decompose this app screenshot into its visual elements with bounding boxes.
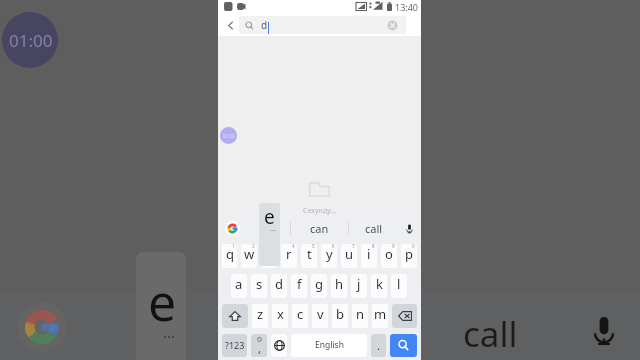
staticText: d bbox=[275, 275, 283, 293]
staticText: e bbox=[148, 268, 177, 336]
staticText: m bbox=[374, 305, 387, 323]
staticText: i bbox=[367, 245, 371, 263]
button[interactable]: d bbox=[271, 274, 287, 298]
button[interactable]: can bbox=[291, 216, 348, 241]
button[interactable]: z bbox=[252, 304, 268, 328]
button[interactable]: i bbox=[361, 244, 377, 268]
button[interactable]: . bbox=[371, 334, 386, 357]
staticText: z bbox=[257, 305, 264, 323]
button[interactable]: l bbox=[391, 274, 407, 298]
button[interactable]: Backspace bbox=[392, 304, 417, 328]
button[interactable]: Clear search bbox=[387, 20, 398, 31]
staticText: v bbox=[317, 305, 324, 323]
staticText: . bbox=[377, 338, 380, 353]
staticText: d bbox=[261, 18, 268, 32]
button[interactable]: t bbox=[301, 244, 317, 268]
staticText: k bbox=[376, 275, 383, 293]
staticText: 4 bbox=[292, 244, 295, 249]
button[interactable]: s bbox=[251, 274, 267, 298]
button[interactable]: u bbox=[341, 244, 357, 268]
button[interactable]: Shift bbox=[222, 304, 248, 328]
button[interactable]: English bbox=[291, 334, 367, 357]
button[interactable]: v bbox=[312, 304, 328, 328]
button[interactable]: ?123 bbox=[222, 334, 247, 357]
staticText: , bbox=[258, 341, 261, 356]
staticText: e bbox=[264, 204, 275, 230]
button[interactable]: e bbox=[261, 244, 277, 268]
staticText: s bbox=[256, 275, 263, 293]
staticText: w bbox=[244, 245, 255, 263]
button[interactable]: n bbox=[352, 304, 368, 328]
staticText: q bbox=[226, 245, 234, 263]
staticText: y bbox=[326, 245, 333, 263]
staticText: Секунду... bbox=[303, 206, 337, 216]
staticText: 13:40 bbox=[395, 1, 419, 13]
button[interactable]: c bbox=[292, 304, 308, 328]
staticText: r bbox=[286, 245, 292, 263]
staticText: 8 bbox=[372, 244, 375, 249]
staticText: u bbox=[345, 245, 354, 263]
staticText: 0 bbox=[412, 244, 415, 249]
staticText: l bbox=[397, 275, 401, 293]
staticText: o bbox=[385, 245, 393, 263]
button[interactable]: m bbox=[372, 304, 388, 328]
button[interactable]: Search bbox=[390, 334, 417, 357]
staticText: 1 bbox=[232, 244, 235, 249]
staticText: c bbox=[297, 305, 304, 323]
button[interactable]: g bbox=[311, 274, 327, 298]
button[interactable]: 01:00 bbox=[220, 127, 237, 144]
button[interactable]: y bbox=[321, 244, 337, 268]
staticText: 9 bbox=[392, 244, 395, 249]
button[interactable]: Change language bbox=[271, 334, 287, 357]
staticText: 2 bbox=[252, 244, 255, 249]
button[interactable]: r bbox=[281, 244, 297, 268]
staticText: x bbox=[277, 305, 284, 323]
staticText: 01:00 bbox=[223, 133, 235, 139]
button[interactable]: Back bbox=[221, 15, 239, 36]
button[interactable]: b bbox=[332, 304, 348, 328]
button[interactable]: Comma bbox=[251, 334, 267, 357]
staticText: b bbox=[336, 305, 344, 323]
button[interactable]: w bbox=[241, 244, 257, 268]
button[interactable]: k bbox=[371, 274, 387, 298]
staticText: 6 bbox=[332, 244, 335, 249]
button[interactable]: o bbox=[381, 244, 397, 268]
staticText: English bbox=[315, 339, 344, 351]
staticText: ?123 bbox=[225, 339, 245, 351]
button[interactable]: h bbox=[331, 274, 347, 298]
button[interactable]: d bbox=[239, 16, 406, 34]
staticText: t bbox=[307, 245, 312, 263]
staticText: h bbox=[335, 275, 344, 293]
staticText: ... bbox=[270, 224, 276, 234]
staticText: a bbox=[235, 275, 243, 293]
staticText: p bbox=[405, 245, 413, 263]
button[interactable]: q bbox=[222, 244, 237, 268]
staticText: 01:00 bbox=[9, 29, 53, 52]
button[interactable]: f bbox=[291, 274, 307, 298]
staticText: call bbox=[463, 310, 518, 358]
button[interactable]: call bbox=[349, 216, 398, 241]
button[interactable]: j bbox=[351, 274, 367, 298]
staticText: j bbox=[357, 275, 361, 293]
staticText: 5 bbox=[312, 244, 315, 249]
staticText: can bbox=[310, 221, 329, 236]
staticText: f bbox=[297, 275, 302, 293]
button[interactable]: x bbox=[272, 304, 288, 328]
button[interactable]: p bbox=[401, 244, 417, 268]
staticText: g bbox=[315, 275, 323, 293]
button[interactable]: Voice input bbox=[398, 216, 421, 241]
staticText: n bbox=[356, 305, 365, 323]
button[interactable]: Google bbox=[218, 216, 290, 241]
button[interactable]: a bbox=[231, 274, 247, 298]
staticText: call bbox=[365, 221, 383, 236]
staticText: 7 bbox=[352, 244, 355, 249]
staticText: ... bbox=[163, 322, 176, 342]
